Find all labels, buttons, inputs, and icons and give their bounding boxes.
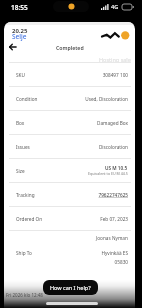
staticText: 4G: [111, 3, 119, 10]
staticText: 05830: [114, 259, 128, 265]
button[interactable]: Tracking: [4, 182, 135, 206]
staticText: Ship To: [16, 250, 32, 256]
staticText: Size: [16, 168, 25, 174]
button[interactable]: Box: [4, 110, 135, 134]
staticText: Hosting sale: [99, 56, 131, 62]
staticText: 79622747625: [98, 192, 128, 198]
button[interactable]: Back: [9, 43, 17, 51]
staticText: SKU: [16, 72, 25, 78]
staticText: 20.25: [12, 27, 28, 35]
staticText: Fri 2026 klo 12:48: [6, 292, 43, 298]
staticText: Selje: [12, 32, 27, 41]
button[interactable]: Ordered On: [4, 206, 135, 230]
staticText: Ordered On: [16, 216, 43, 222]
button[interactable]: SKU: [4, 62, 135, 86]
button[interactable]: How can I help?: [43, 280, 98, 295]
staticText: Feb 07, 2023: [100, 216, 128, 222]
staticText: 308497 100: [102, 72, 128, 78]
staticText: Damaged Box: [97, 120, 128, 126]
button[interactable]: Ship To: [4, 230, 135, 275]
staticText: How can I help?: [50, 284, 91, 291]
staticText: Completed: [56, 44, 84, 51]
staticText: Condition: [16, 96, 38, 102]
button[interactable]: Condition: [4, 86, 135, 110]
staticText: Box: [16, 120, 25, 126]
staticText: Equivalent to EU M 44.5: [88, 171, 128, 176]
button[interactable]: Issues: [4, 134, 135, 158]
staticText: Used, Discoloration: [85, 96, 128, 102]
staticText: US M 10.5: [105, 165, 128, 171]
staticText: Joonas Nyman: [96, 235, 128, 241]
staticText: Hyvinkää ES: [101, 250, 128, 256]
staticText: 18:55: [11, 3, 28, 12]
staticText: Issues: [16, 144, 30, 150]
staticText: Discoloration: [98, 144, 128, 150]
button[interactable]: Size: [4, 158, 135, 182]
staticText: Tracking: [16, 192, 35, 198]
